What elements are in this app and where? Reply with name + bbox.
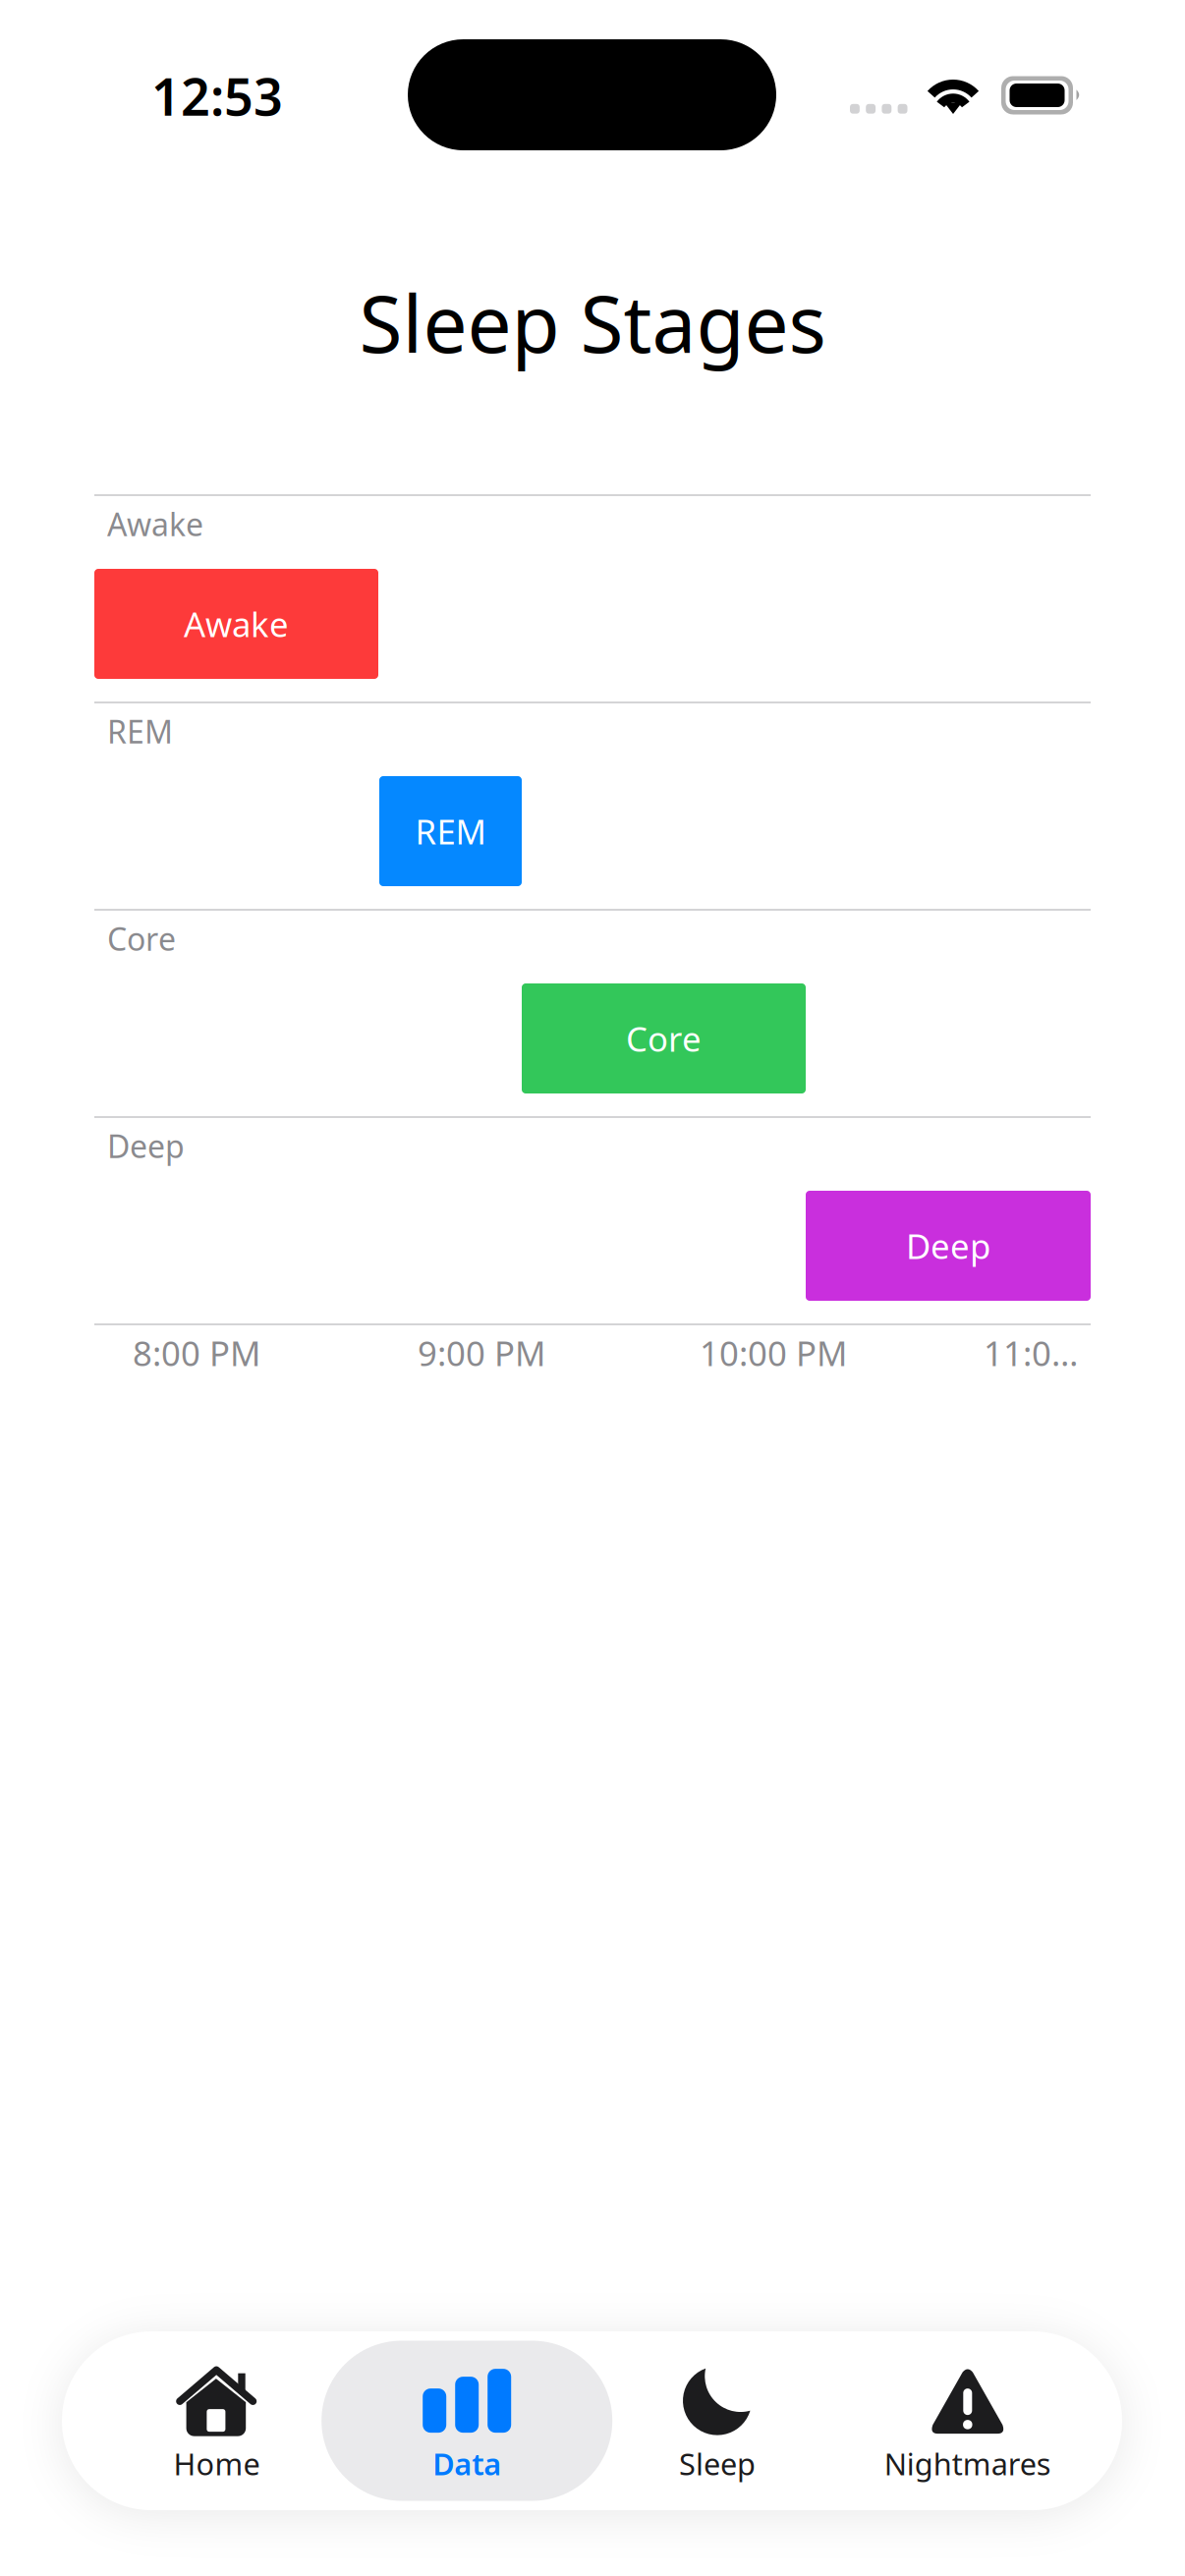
staticText: Deep [906,1223,990,1268]
button[interactable]: Data [322,2341,612,2501]
staticText: 9:00 PM [418,1330,545,1375]
staticText: 8:00 PM [133,1330,260,1375]
staticText: 12:53 [151,62,283,130]
staticText: Data [433,2443,501,2483]
staticText: Core [107,918,176,959]
staticText: Awake [107,503,203,545]
staticText: Deep [107,1125,185,1167]
button[interactable]: Nightmares [822,2341,1113,2501]
staticText: 10:00 PM [700,1330,847,1375]
staticText: Core [626,1016,702,1061]
staticText: REM [107,710,173,752]
staticText: Awake [184,601,289,646]
staticText: Nightmares [884,2443,1051,2483]
staticText: 11:0… [984,1330,1078,1375]
button[interactable]: Home [71,2341,362,2501]
staticText: Sleep [679,2443,756,2483]
staticText: Home [173,2443,260,2483]
button[interactable]: Sleep [572,2341,863,2501]
staticText: Sleep Stages [359,270,826,374]
staticText: REM [415,809,486,854]
